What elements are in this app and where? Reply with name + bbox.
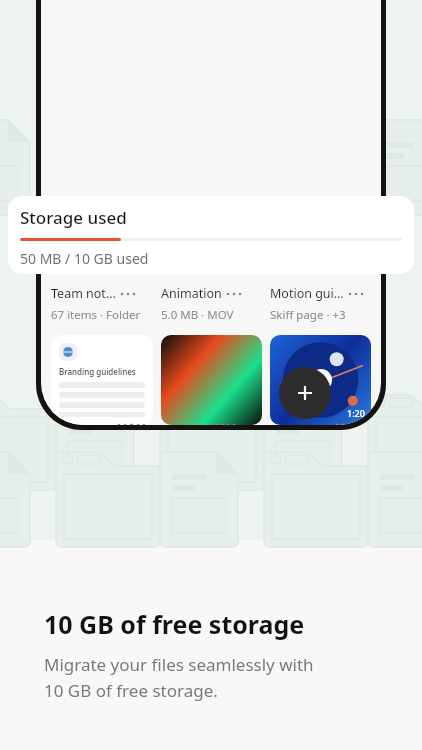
button[interactable]: 1:20 [270, 335, 371, 425]
staticText: 67 items · Folder [51, 307, 141, 323]
button[interactable] [161, 335, 262, 425]
staticText: 1:20 [347, 407, 365, 419]
button[interactable]: Animation [161, 285, 262, 323]
staticText: Skiff page · +3 [270, 307, 346, 323]
staticText: 50 MB / 10 GB used [20, 249, 149, 268]
staticText: Animation [161, 285, 222, 302]
staticText: 5.0 MB · MOV [161, 307, 234, 323]
staticText: Branding guidelines [59, 366, 136, 377]
staticText: Migrate your files seamlessly with 10 GB… [44, 653, 314, 702]
staticText: Motion gui… [270, 285, 344, 302]
staticText: 10 GB of free storage [44, 607, 305, 641]
button[interactable]: Storage used [8, 196, 414, 274]
button[interactable]: Team not… [51, 285, 153, 323]
staticText: Team not… [51, 285, 116, 302]
button[interactable]: Add file [279, 367, 331, 419]
button[interactable]: Motion gui… [270, 285, 371, 323]
button[interactable]: Branding guidelines [51, 335, 153, 425]
staticText: Storage used [20, 206, 127, 229]
